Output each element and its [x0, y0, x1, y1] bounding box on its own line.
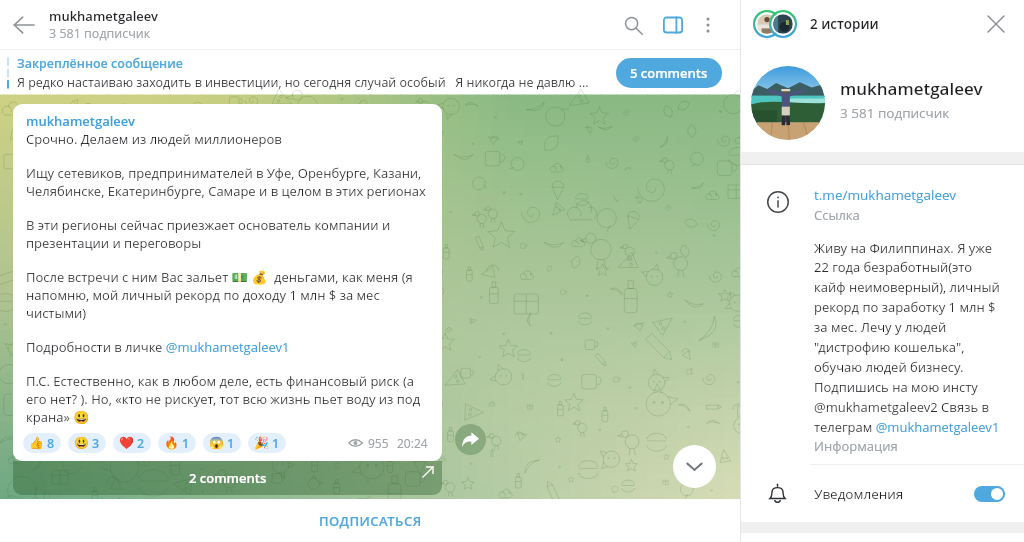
staticText: 😱 — [209, 436, 224, 450]
staticText: После встречи с ним Вас зальет 💵 💰 деньг… — [26, 268, 413, 286]
staticText: Срочно. Делаем из людей миллионеров — [26, 130, 282, 148]
button[interactable]: 😃 — [68, 433, 106, 453]
button[interactable]: 🔥 — [158, 433, 196, 453]
staticText: 😃 — [74, 436, 89, 450]
staticText: 🎉 — [254, 436, 269, 450]
staticText: 2 — [137, 435, 145, 452]
staticText: его нет? ). Но, «кто не рискует, тот всю… — [26, 390, 421, 408]
staticText: Уведомления — [814, 485, 904, 503]
button[interactable]: Уведомления — [741, 465, 1024, 522]
button[interactable]: 👍 — [23, 433, 61, 453]
button[interactable]: 2 истории — [741, 0, 1024, 47]
button[interactable]: Закреплённое сообщение — [0, 50, 740, 95]
button[interactable]: t.me/mukhametgaleev — [741, 165, 1024, 464]
button[interactable]: 2 comments — [13, 461, 442, 495]
button[interactable]: Profile photo — [751, 66, 825, 140]
staticText: Ищу сетевиков, предпринимателей в Уфе, О… — [26, 164, 422, 182]
staticText: 5 comments — [630, 64, 708, 82]
staticText: напомню, мой личный рекорд по доходу 1 м… — [26, 286, 380, 304]
staticText: 20:24 — [397, 435, 428, 451]
staticText: ❤️ — [119, 436, 134, 450]
staticText: 1 — [182, 435, 190, 452]
staticText: В эти регионы сейчас приезжает основател… — [26, 216, 431, 234]
button[interactable]: ❤️ — [113, 433, 151, 453]
staticText: чистыми) — [26, 304, 87, 322]
staticText: 3 581 подписчик — [840, 104, 950, 122]
staticText: Информация — [814, 437, 898, 455]
staticText: Живу на Филиппинах. Я уже 22 года безраб… — [814, 239, 1004, 436]
staticText: Ссылка — [814, 206, 860, 224]
staticText: Челябинске, Екатеринбурге, Самаре и в це… — [26, 182, 426, 200]
staticText: 🔥 — [164, 436, 179, 450]
staticText: крана» 😃 — [26, 408, 90, 426]
staticText: 1 — [272, 435, 280, 452]
staticText: 3 581 подписчик — [49, 25, 151, 42]
button[interactable]: 🎉 — [248, 433, 286, 453]
staticText: mukhametgaleev — [49, 7, 159, 25]
staticText: 8 — [47, 435, 55, 452]
button[interactable]: More options — [693, 3, 729, 47]
button[interactable]: ПОДПИСАТЬСЯ — [0, 499, 740, 542]
staticText: П.С. Естественно, как в любом деле, есть… — [26, 372, 431, 390]
button[interactable]: Scroll to bottom — [673, 445, 716, 488]
staticText: t.me/mukhametgaleev — [814, 186, 957, 204]
staticText: 955 — [368, 435, 389, 451]
staticText: 1 — [227, 435, 235, 452]
staticText: 👍 — [29, 436, 44, 450]
button[interactable]: mukhametgaleev — [13, 104, 442, 461]
staticText: ПОДПИСАТЬСЯ — [319, 512, 422, 530]
staticText: Я редко настаиваю заходить в инвестиции,… — [17, 74, 589, 91]
staticText: mukhametgaleev — [26, 112, 136, 130]
button[interactable]: Notifications toggle — [974, 486, 1005, 502]
staticText: 3 — [92, 435, 100, 452]
staticText: Закреплённое сообщение — [17, 55, 183, 72]
staticText: 2 истории — [810, 15, 879, 33]
button[interactable]: 5 comments — [616, 58, 722, 88]
button[interactable]: Back — [0, 1, 48, 49]
button[interactable]: Split view — [653, 3, 693, 47]
staticText: mukhametgaleev — [840, 77, 983, 100]
button[interactable]: 😱 — [203, 433, 241, 453]
button[interactable]: Share — [455, 424, 486, 455]
staticText: Подробности в личке @mukhametgaleev1 — [26, 338, 290, 356]
button[interactable]: Search — [613, 3, 653, 47]
staticText: презентации и переговоры — [26, 234, 202, 252]
button[interactable]: Close — [974, 2, 1018, 46]
staticText: 2 comments — [189, 469, 267, 487]
